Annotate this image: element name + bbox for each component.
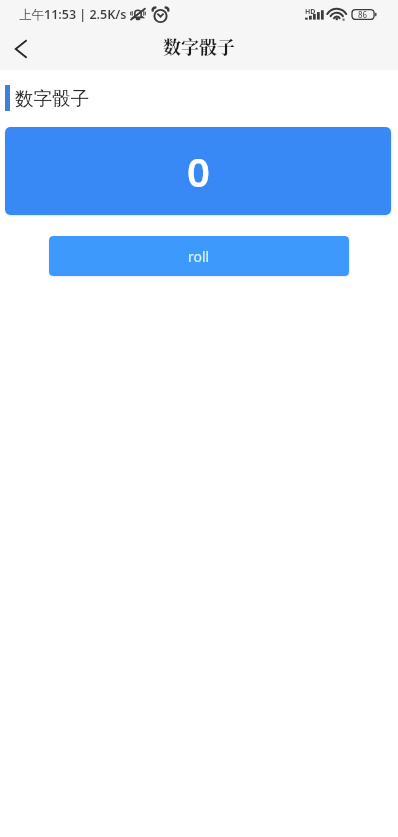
staticText: 0 [187, 144, 210, 198]
staticText: 86 [358, 9, 368, 20]
button[interactable]: Back [0, 28, 42, 70]
button[interactable]: roll [49, 236, 349, 276]
staticText: roll [188, 247, 210, 266]
button[interactable]: 0 [5, 127, 391, 215]
staticText: 数字骰子 [163, 33, 235, 59]
staticText: HD [305, 7, 316, 17]
staticText: 上午11:53 | 2.5K/s [19, 6, 127, 23]
staticText: 数字骰子 [15, 87, 89, 110]
